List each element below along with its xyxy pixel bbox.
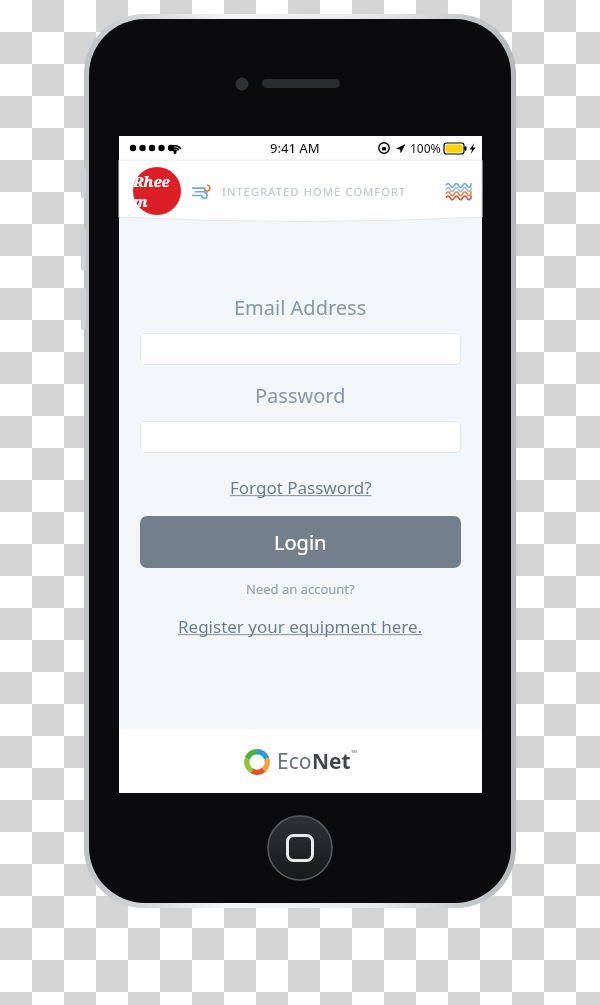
button[interactable]: Rheem (133, 167, 181, 215)
staticText: Forgot Password? (230, 476, 372, 499)
other: Airflow (191, 183, 211, 199)
staticText: Need an account? (246, 580, 355, 598)
staticText: Login (274, 529, 327, 556)
staticText: ™ (351, 747, 358, 758)
staticText: Email Address (234, 294, 367, 321)
button[interactable] (140, 421, 461, 453)
button[interactable]: Login (140, 516, 461, 568)
button[interactable]: Register your equipment here. (172, 612, 429, 641)
staticText: Net (312, 747, 351, 776)
staticText: 100% (410, 140, 441, 156)
staticText: Password (255, 382, 346, 409)
button[interactable]: Forgot Password? (224, 473, 378, 502)
other: Water (445, 182, 472, 201)
staticText: INTEGRATED HOME COMFORT (222, 184, 407, 199)
button[interactable] (140, 333, 461, 365)
staticText: Register your equipment here. (178, 615, 423, 638)
staticText: Eco (277, 747, 312, 776)
staticText: Rheem (133, 171, 181, 211)
staticText: 9:41 AM (270, 139, 320, 157)
button[interactable]: Home (267, 815, 333, 881)
